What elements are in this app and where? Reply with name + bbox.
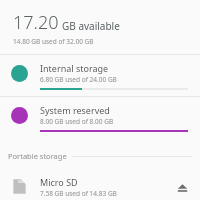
staticText: 14.80 GB used of 32.00 GB (13, 37, 94, 46)
staticText: Portable storage (8, 151, 67, 161)
staticText: Micro SD (40, 176, 78, 188)
staticText: 8.00 GB used of 8.00 GB (40, 117, 114, 126)
button[interactable]: System reserved (0, 97, 200, 138)
button[interactable]: Internal storage (0, 55, 200, 96)
staticText: GB available (62, 19, 120, 33)
staticText: 17.20 (13, 10, 59, 35)
staticText: Internal storage (40, 62, 109, 74)
button[interactable]: Micro SD (0, 173, 200, 200)
staticText: 7.58 GB used of 14.83 GB (40, 189, 117, 198)
button[interactable]: Eject Micro SD (169, 174, 195, 200)
staticText: System reserved (40, 104, 110, 116)
staticText: 6.80 GB used of 24.00 GB (40, 75, 117, 84)
